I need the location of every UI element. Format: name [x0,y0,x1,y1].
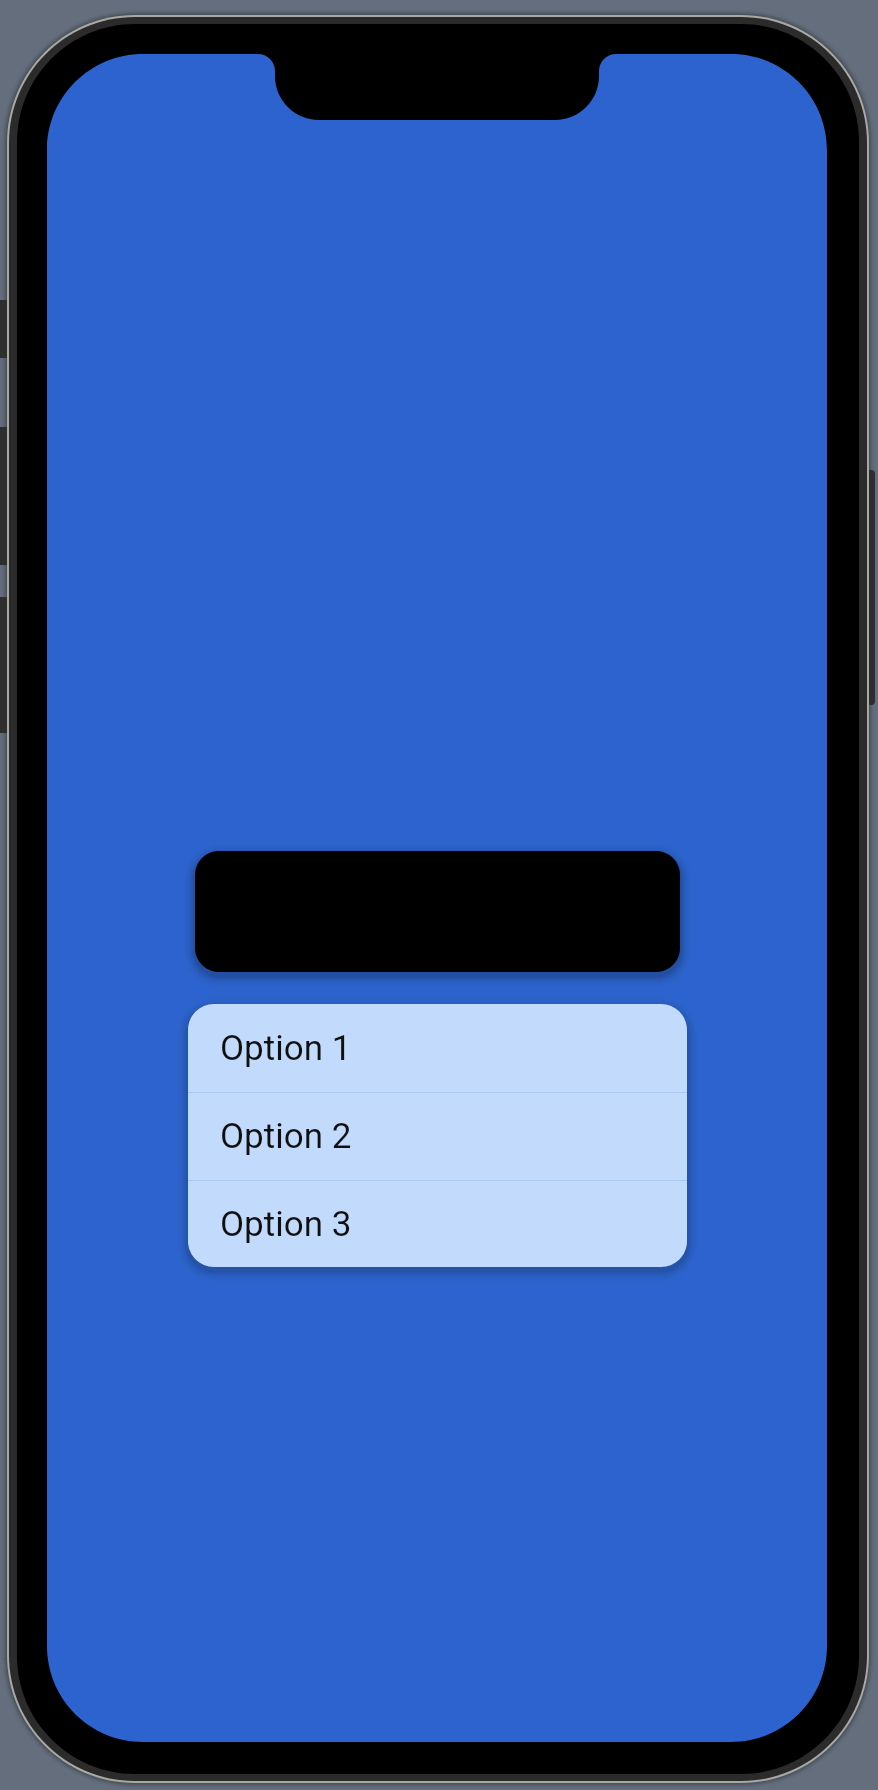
button[interactable]: Open dropdown [195,851,680,972]
staticText: Option 3 [220,1204,352,1245]
button[interactable]: Option 1 [188,1004,687,1092]
staticText: Option 2 [220,1116,352,1157]
button[interactable]: Option 3 [188,1181,687,1267]
staticText: Option 1 [220,1028,352,1069]
button[interactable]: Option 2 [188,1093,687,1180]
